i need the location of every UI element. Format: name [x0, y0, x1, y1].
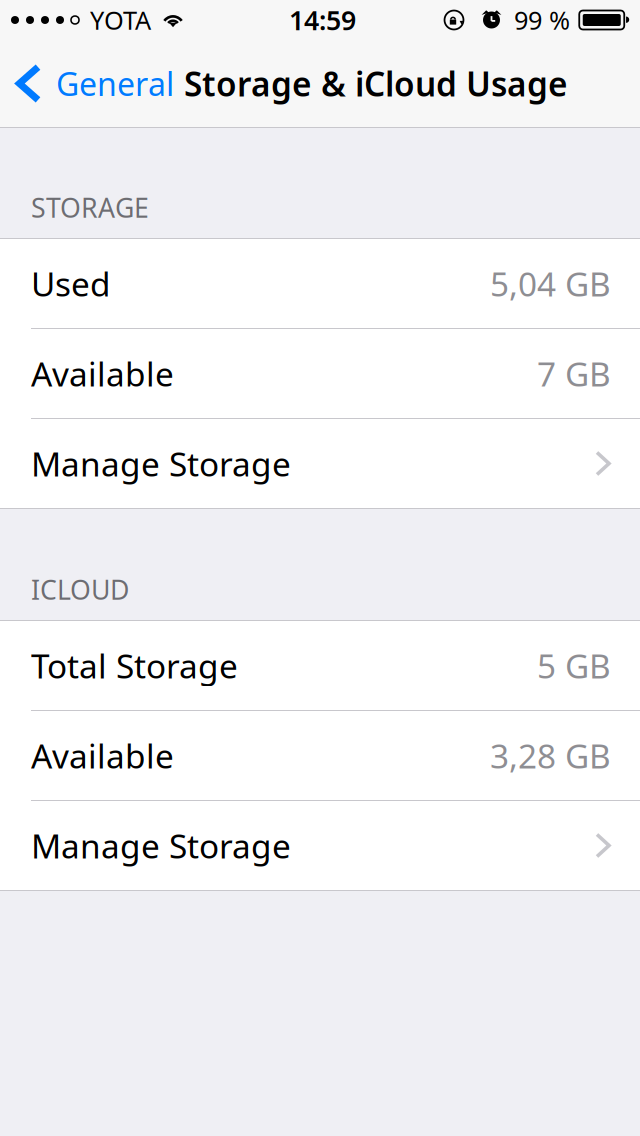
staticText: 99 %: [514, 3, 570, 37]
staticText: Manage Storage: [31, 823, 291, 868]
staticText: 5,04 GB: [490, 261, 611, 306]
button[interactable]: Available: [0, 711, 640, 800]
staticText: STORAGE: [31, 190, 149, 225]
button[interactable]: Total Storage: [0, 621, 640, 710]
staticText: Used: [31, 261, 111, 306]
staticText: Available: [31, 351, 174, 396]
staticText: 5 GB: [537, 643, 611, 688]
staticText: Available: [31, 733, 174, 778]
staticText: YOTA: [90, 3, 151, 37]
staticText: ICLOUD: [31, 572, 129, 607]
button[interactable]: Manage Storage: [0, 801, 640, 890]
button[interactable]: Available: [0, 329, 640, 418]
button[interactable]: Used: [0, 239, 640, 328]
staticText: Total Storage: [31, 643, 238, 688]
staticText: General: [56, 62, 174, 105]
staticText: Storage & iCloud Usage: [184, 61, 568, 106]
button[interactable]: Manage Storage: [0, 419, 640, 508]
button[interactable]: General: [0, 39, 178, 127]
staticText: 3,28 GB: [490, 733, 611, 778]
staticText: 7 GB: [537, 351, 611, 396]
staticText: 14:59: [289, 2, 356, 38]
staticText: Manage Storage: [31, 441, 291, 486]
